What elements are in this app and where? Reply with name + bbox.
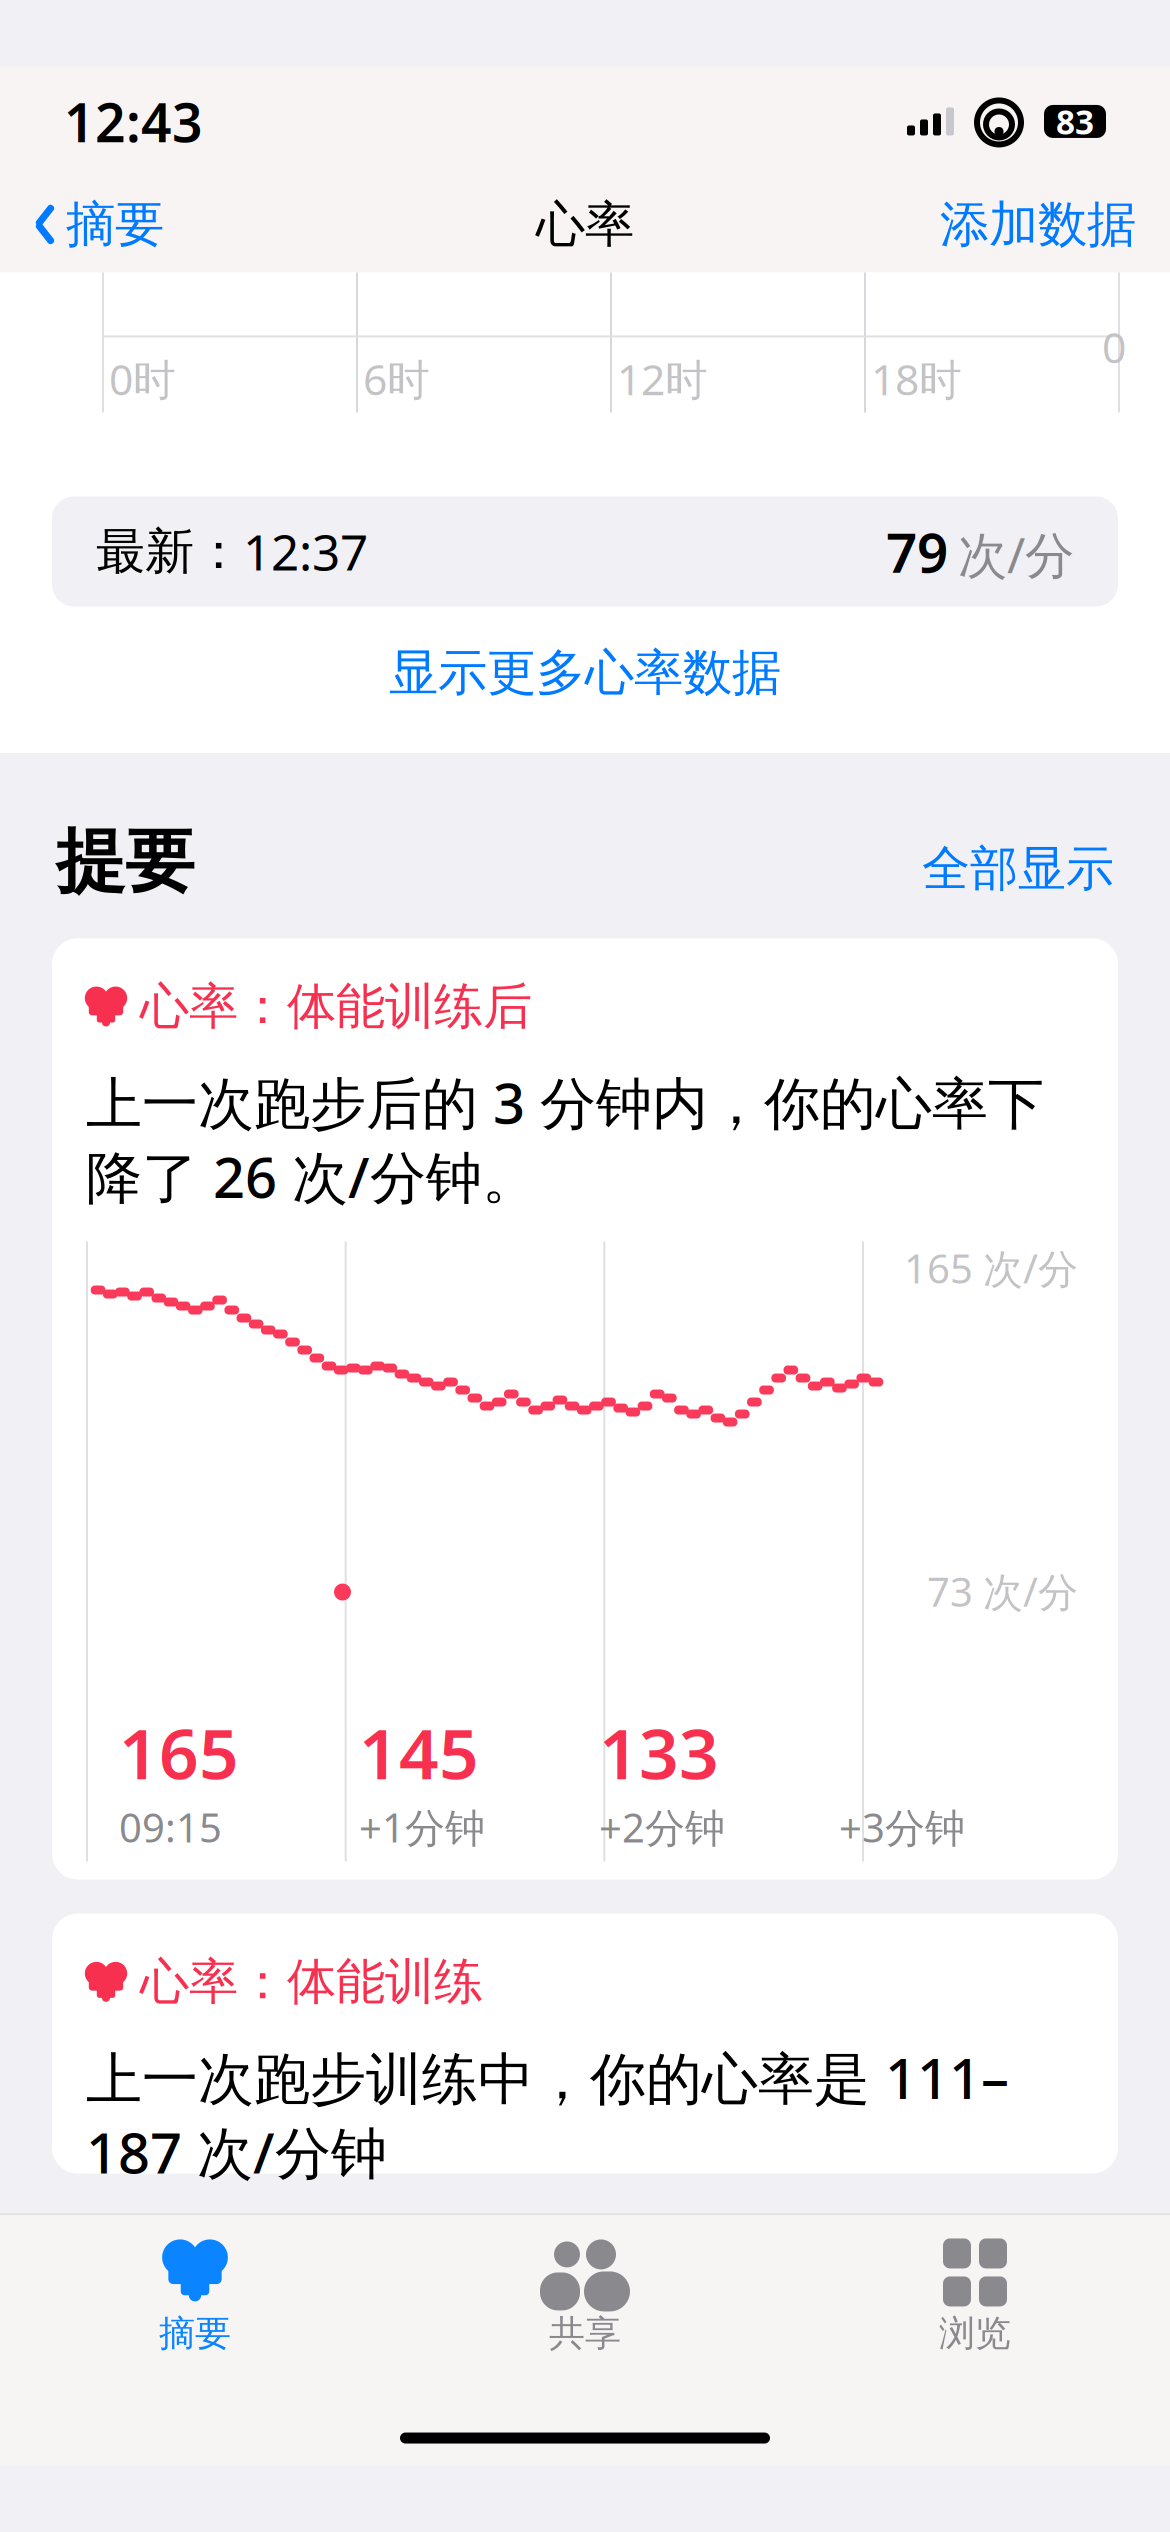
- staticText: 共享: [549, 2311, 621, 2356]
- staticText: 12时: [617, 350, 708, 407]
- button[interactable]: 摘要: [0, 2223, 390, 2356]
- staticText: 83: [1056, 99, 1094, 144]
- staticText: +3分钟: [839, 1800, 965, 1853]
- staticText: 79: [886, 515, 948, 588]
- button[interactable]: 添加数据: [940, 186, 1136, 263]
- staticText: 提要: [56, 819, 194, 904]
- button[interactable]: 浏览: [780, 2223, 1170, 2356]
- staticText: 摘要: [66, 194, 164, 255]
- staticText: +1分钟: [359, 1800, 485, 1853]
- staticText: 上一次跑步训练中，你的心率是 111–187 次/分钟: [86, 2040, 1009, 2189]
- staticText: +2分钟: [599, 1800, 725, 1853]
- staticText: 18时: [871, 350, 962, 407]
- staticText: 0时: [109, 350, 176, 407]
- staticText: 145: [359, 1706, 479, 1798]
- staticText: 0: [1102, 318, 1126, 375]
- button[interactable]: 共享: [390, 2223, 780, 2356]
- staticText: 12:37: [243, 519, 368, 584]
- staticText: 73 次/分: [927, 1565, 1078, 1618]
- staticText: 摘要: [159, 2311, 231, 2356]
- staticText: 浏览: [939, 2311, 1011, 2356]
- staticText: 全部显示: [922, 839, 1114, 898]
- staticText: 上一次跑步后的 3 分钟内，你的心率下降了 26 次/分钟。: [86, 1065, 1044, 1213]
- button[interactable]: 显示更多心率数据: [0, 616, 1170, 729]
- staticText: 心率：体能训练: [140, 1951, 483, 2012]
- staticText: 133: [599, 1706, 719, 1798]
- staticText: 显示更多心率数据: [389, 642, 781, 703]
- staticText: 09:15: [119, 1800, 222, 1853]
- staticText: 165 次/分: [904, 1241, 1078, 1295]
- button[interactable]: 摘要: [34, 186, 164, 263]
- staticText: 165: [119, 1706, 239, 1798]
- staticText: 添加数据: [940, 194, 1136, 255]
- staticText: 6时: [363, 350, 430, 407]
- button[interactable]: 心率：体能训练后: [52, 938, 1118, 1879]
- button[interactable]: 心率：体能训练: [52, 1913, 1118, 2173]
- staticText: 最新：: [96, 521, 243, 582]
- staticText: 心率: [536, 194, 634, 255]
- staticText: 心率：体能训练后: [140, 976, 532, 1037]
- staticText: 次/分: [958, 521, 1074, 587]
- button[interactable]: 全部显示: [922, 833, 1114, 904]
- staticText: 12:43: [64, 86, 203, 157]
